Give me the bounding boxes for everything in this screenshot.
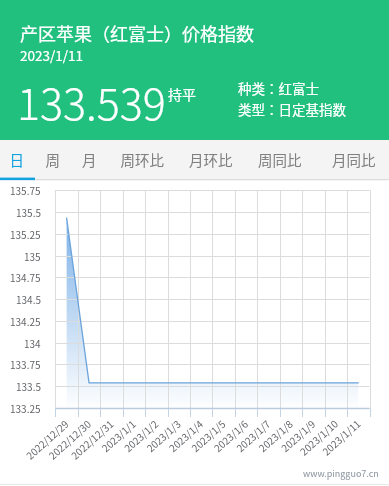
button[interactable] [250,140,310,180]
button[interactable] [38,140,69,180]
button[interactable] [2,140,33,180]
button[interactable] [181,140,241,180]
button[interactable] [324,140,384,180]
button[interactable] [74,140,105,180]
button[interactable] [113,140,173,180]
